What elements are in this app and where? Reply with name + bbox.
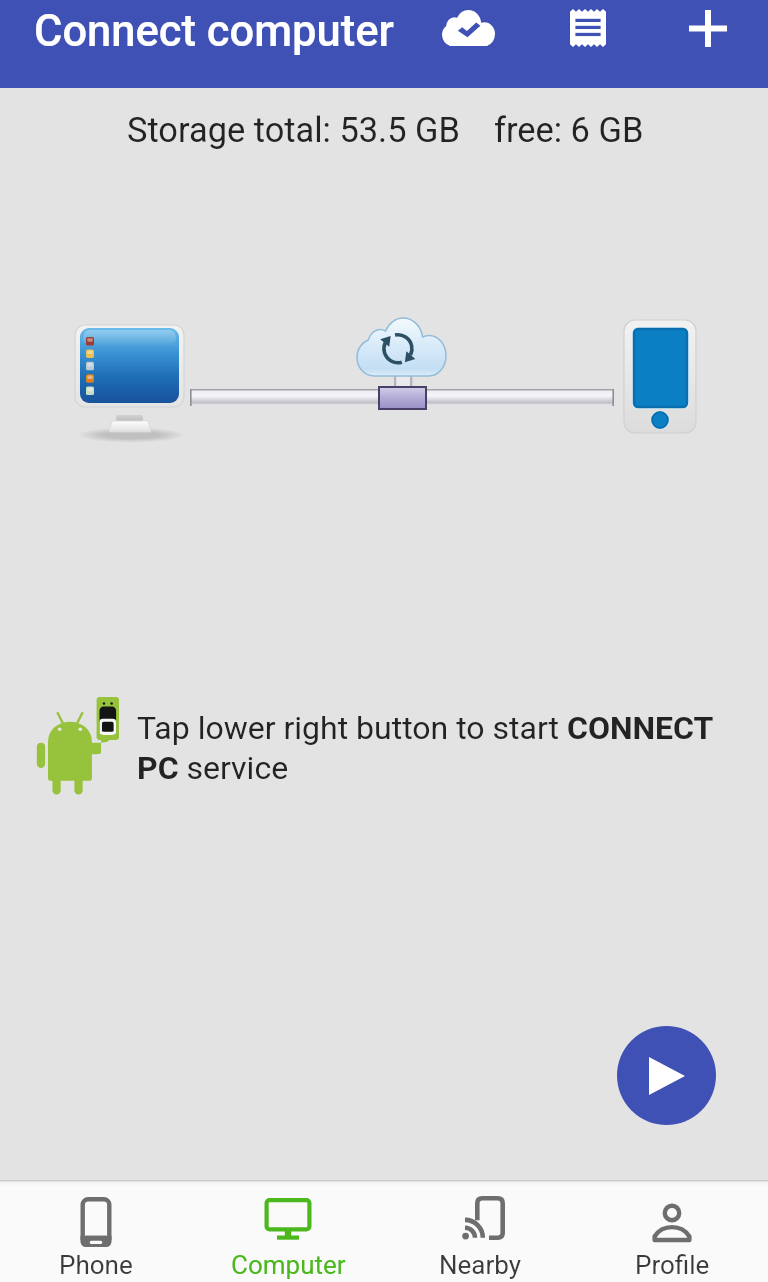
button[interactable]: Cloud sync	[430, 0, 506, 56]
staticText: Nearby	[439, 1250, 522, 1280]
staticText: Tap lower right button to start CONNECT …	[137, 709, 722, 786]
button[interactable]: Start service	[617, 1026, 716, 1125]
staticText: Connect computer	[34, 6, 394, 57]
staticText: Computer	[231, 1250, 346, 1280]
button[interactable]: Log	[550, 0, 626, 56]
staticText: Phone	[59, 1250, 133, 1280]
button[interactable]: Computer	[192, 1180, 384, 1282]
button[interactable]: Add	[670, 0, 746, 56]
button[interactable]: Phone	[0, 1180, 192, 1282]
button[interactable]: Nearby	[384, 1180, 576, 1282]
staticText: Profile	[635, 1250, 710, 1280]
button[interactable]: Profile	[576, 1180, 768, 1282]
staticText: Storage total: 53.5 GB free: 6 GB	[127, 110, 644, 150]
